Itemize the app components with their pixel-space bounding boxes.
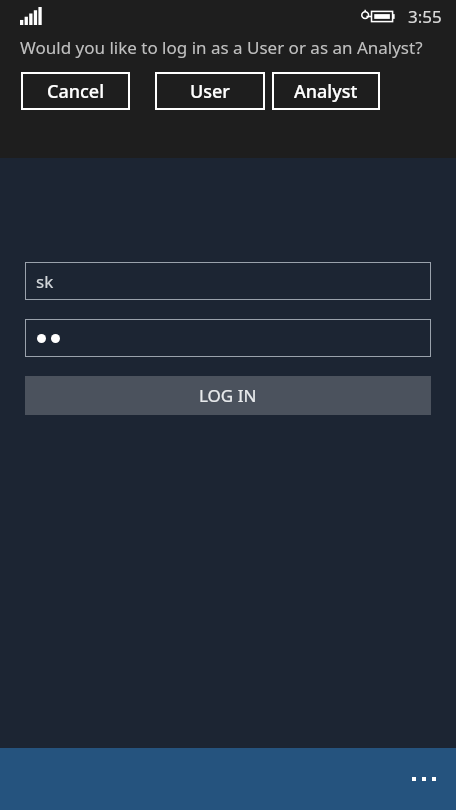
button[interactable]: LOG IN — [25, 376, 431, 415]
staticText: User — [190, 79, 230, 104]
button[interactable]: User — [155, 72, 265, 110]
staticText: 3:55 — [408, 5, 442, 28]
staticText: Would you like to log in as a User or as… — [20, 36, 423, 59]
button[interactable]: Cancel — [21, 72, 130, 110]
staticText: sk — [36, 270, 54, 293]
button[interactable]: More options — [400, 755, 448, 803]
button[interactable]: Analyst — [272, 72, 380, 110]
button[interactable] — [25, 319, 431, 357]
staticText: ViPhone — [127, 96, 329, 170]
staticText: LOG IN — [199, 384, 257, 407]
staticText: Cancel — [47, 79, 105, 104]
staticText: Analyst — [294, 79, 358, 104]
button[interactable]: sk — [25, 262, 431, 300]
